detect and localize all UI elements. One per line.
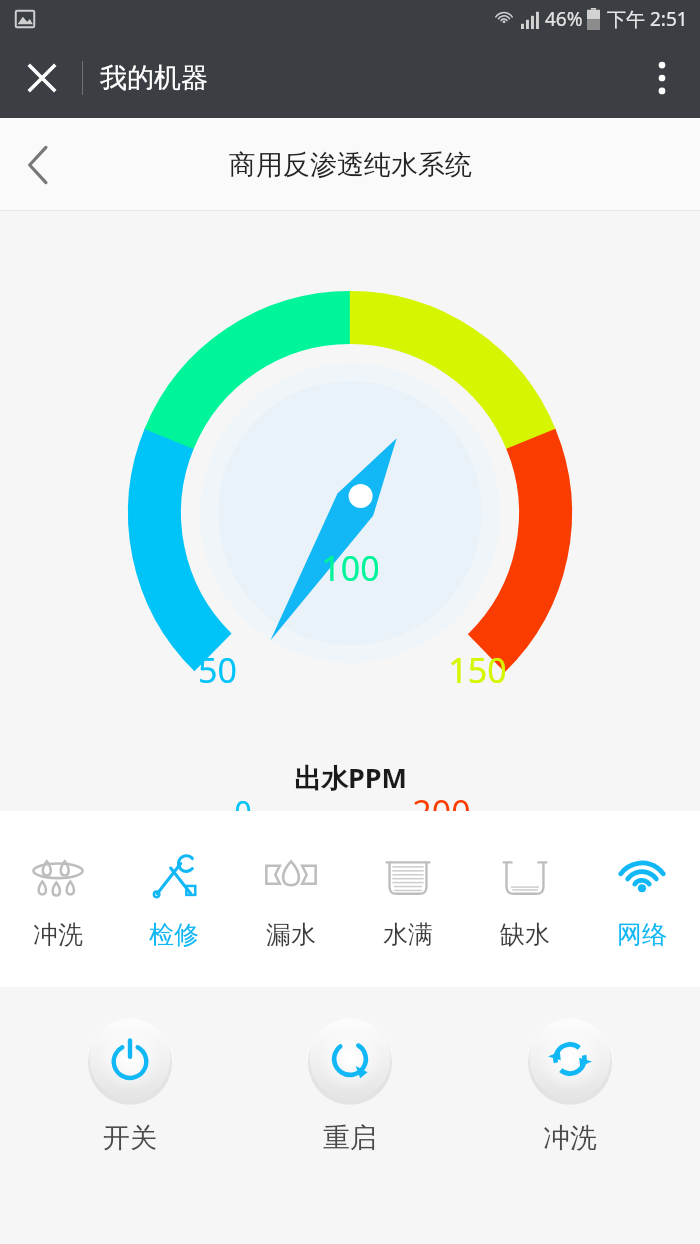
button[interactable]: 水满 xyxy=(349,811,466,987)
staticText: 150 xyxy=(448,647,507,693)
staticText: 重启 xyxy=(323,1121,377,1155)
staticText: 0 xyxy=(234,791,252,832)
button[interactable]: 检修 xyxy=(116,811,232,987)
button[interactable]: 缺水 xyxy=(466,811,583,987)
staticText: 商用反渗透纯水系统 xyxy=(229,148,472,182)
button[interactable]: More options xyxy=(634,50,690,106)
staticText: 50 xyxy=(198,647,237,693)
staticText: 网络 xyxy=(617,919,667,950)
staticText: 开关 xyxy=(103,1121,157,1155)
staticText: 46% xyxy=(545,6,583,32)
button[interactable]: 冲洗 xyxy=(480,1013,660,1155)
staticText: 冲洗 xyxy=(33,919,83,950)
staticText: 我的机器 xyxy=(100,61,208,95)
button[interactable]: Back xyxy=(6,133,70,197)
staticText: 漏水 xyxy=(266,919,316,950)
button[interactable]: Close xyxy=(14,50,70,106)
staticText: 缺水 xyxy=(500,919,550,950)
button[interactable]: 重启 xyxy=(260,1013,440,1155)
button[interactable]: 冲洗 xyxy=(0,811,116,987)
staticText: 100 xyxy=(321,545,380,591)
staticText: 检修 xyxy=(149,919,199,950)
button[interactable]: 开关 xyxy=(40,1013,220,1155)
staticText: 冲洗 xyxy=(543,1121,597,1155)
staticText: 出水PPM xyxy=(294,759,407,796)
staticText: 下午 2:51 xyxy=(607,6,688,32)
button[interactable]: 网络 xyxy=(583,811,700,987)
staticText: 200 xyxy=(412,789,471,835)
staticText: 水满 xyxy=(383,919,433,950)
button[interactable]: 漏水 xyxy=(232,811,349,987)
